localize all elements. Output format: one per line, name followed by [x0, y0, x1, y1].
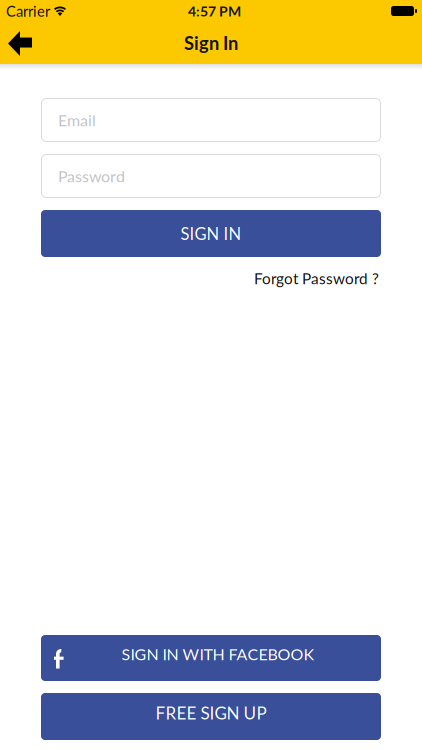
button[interactable]: SIGN IN	[41, 210, 381, 257]
button[interactable]: Password	[41, 154, 381, 198]
staticText: 4:57 PM	[188, 3, 241, 19]
staticText: Forgot Password ?	[254, 269, 379, 287]
button[interactable]: Email	[41, 98, 381, 142]
button[interactable]: FREE SIGN UP	[41, 693, 381, 740]
staticText: SIGN IN WITH FACEBOOK	[121, 644, 314, 664]
staticText: FREE SIGN UP	[155, 703, 266, 723]
button[interactable]: SIGN IN WITH FACEBOOK	[41, 635, 381, 681]
button[interactable]: Forgot Password ?	[254, 269, 379, 287]
staticText: Carrier	[6, 2, 50, 20]
staticText: Email	[58, 110, 96, 130]
button[interactable]	[0, 30, 32, 56]
staticText: Password	[58, 166, 125, 186]
staticText: SIGN IN	[180, 224, 241, 243]
staticText: Sign In	[184, 32, 238, 54]
